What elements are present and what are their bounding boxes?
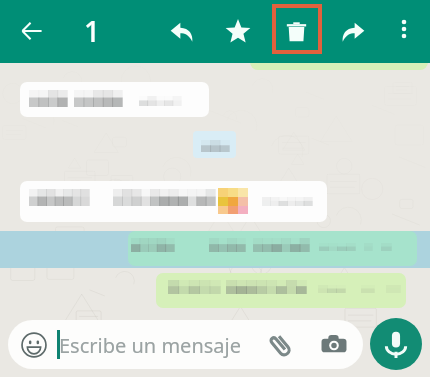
button[interactable]: Back (8, 7, 56, 55)
button[interactable]: Star (214, 7, 262, 55)
staticText: 1 (84, 12, 101, 50)
button[interactable]: Voice message (370, 318, 422, 370)
button[interactable]: Forward (329, 7, 377, 55)
button[interactable] (20, 181, 327, 222)
staticText: Escribe un mensaje (59, 332, 241, 359)
button[interactable] (128, 231, 417, 266)
button[interactable] (156, 273, 406, 308)
button[interactable]: Escribe un mensaje (8, 320, 363, 369)
button[interactable]: Camera (315, 326, 353, 364)
button[interactable]: Reply (157, 7, 205, 55)
button[interactable] (250, 20, 428, 70)
button[interactable]: Attach (261, 326, 299, 364)
button[interactable]: Delete (272, 7, 320, 55)
button[interactable] (20, 82, 209, 117)
button[interactable]: More options (382, 7, 426, 51)
